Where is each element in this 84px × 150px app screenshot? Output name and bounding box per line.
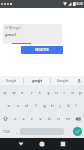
button[interactable]: x [19,112,27,125]
staticText: d [25,103,28,108]
staticText: . [67,129,69,134]
button[interactable]: k [64,99,72,112]
staticText: x [22,116,25,121]
staticText: w [12,90,16,95]
button[interactable]: i [60,85,68,99]
button[interactable]: a [4,99,13,112]
staticText: h [51,103,54,108]
button[interactable] [0,112,11,125]
staticText: k [67,103,70,108]
button[interactable]: Google [0,76,23,85]
staticText: google [32,79,43,83]
button[interactable] [71,125,84,138]
staticText: u [55,90,58,95]
button[interactable]: p [76,85,84,99]
button[interactable]: z [11,112,19,125]
button[interactable]: b [45,112,54,125]
button[interactable]: u [52,85,60,99]
staticText: v [39,116,42,121]
staticText: s [17,103,19,108]
button[interactable]: v [36,112,45,125]
button[interactable]: google [24,76,50,85]
staticText: y [47,90,50,95]
staticText: o [71,90,74,95]
button[interactable]: m [63,112,72,125]
button[interactable]: REGISTER [21,46,63,54]
staticText: Google [6,79,17,83]
staticText: j [59,103,61,108]
staticText: i [63,90,65,95]
button[interactable]: r [27,85,36,99]
staticText: r [31,90,33,95]
staticText: e [21,90,24,95]
staticText: m [66,116,70,121]
button[interactable]: h [48,99,56,112]
button[interactable]: ?123 [0,125,13,138]
staticText: a [7,103,10,108]
button[interactable]: y [44,85,52,99]
button[interactable]: n [54,112,63,125]
staticText: 16:28 [75,2,83,6]
button[interactable] [15,138,27,150]
staticText: , [16,129,18,134]
button[interactable]: , [13,125,20,138]
button[interactable] [36,138,48,150]
staticText: Id Weingut [5,26,21,30]
staticText: n [57,116,60,121]
staticText: g [43,103,46,108]
button[interactable]: q [0,85,9,99]
button[interactable]: e [18,85,27,99]
staticText: l [75,103,77,108]
staticText: t [39,90,41,95]
staticText: REGISTER [35,48,49,52]
button[interactable]: l [72,99,80,112]
staticText: q [3,90,6,95]
button[interactable]: j [56,99,64,112]
button[interactable]: d [22,99,31,112]
button[interactable] [74,76,84,85]
staticText: Googles [57,79,69,83]
button[interactable]: Googles [51,76,74,85]
button[interactable]: c [27,112,36,125]
staticText: f [35,103,37,108]
button[interactable] [57,138,69,150]
button[interactable] [72,112,84,125]
button[interactable]: o [68,85,76,99]
staticText: p [79,90,82,95]
staticText: z [14,116,16,121]
button[interactable]: t [36,85,44,99]
button[interactable]: g [40,99,48,112]
button[interactable]: w [9,85,18,99]
staticText: gmail [5,32,16,37]
staticText: ?123 [3,130,10,134]
button[interactable]: s [13,99,22,112]
staticText: b [48,116,51,121]
staticText: c [31,116,33,121]
button[interactable]: f [31,99,40,112]
button[interactable]: Id Weingut [3,24,62,44]
